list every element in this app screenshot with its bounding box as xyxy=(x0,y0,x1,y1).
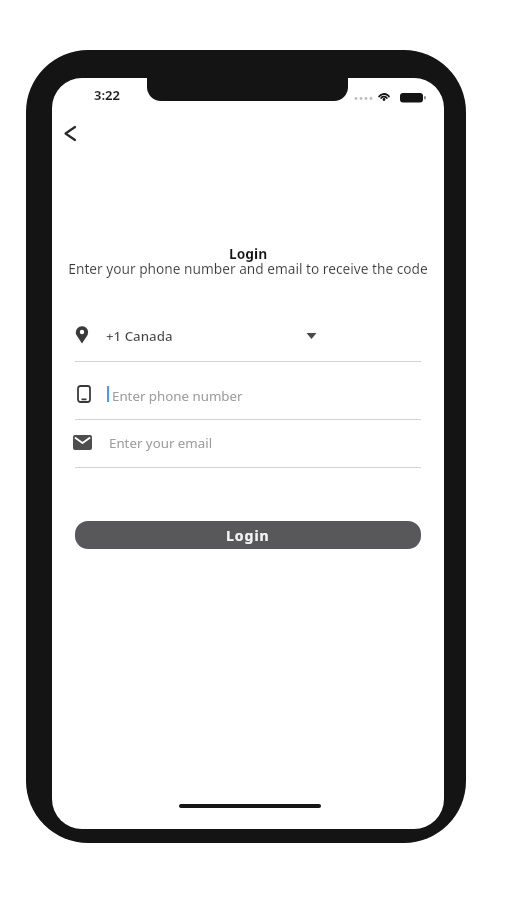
button[interactable]: Enter phone number xyxy=(68,380,428,419)
staticText: Enter your phone number and email to rec… xyxy=(68,259,428,278)
staticText: Enter phone number xyxy=(112,387,243,405)
staticText: Login xyxy=(229,244,268,263)
staticText: +1 Canada xyxy=(106,327,173,345)
staticText: 3:22 xyxy=(94,86,120,104)
button[interactable]: Login xyxy=(75,521,421,549)
staticText: Login xyxy=(226,526,270,545)
button[interactable]: +1 Canada xyxy=(68,320,428,361)
staticText: Enter your email xyxy=(109,434,213,452)
button[interactable]: Enter your email xyxy=(68,430,428,467)
button[interactable] xyxy=(52,116,89,150)
